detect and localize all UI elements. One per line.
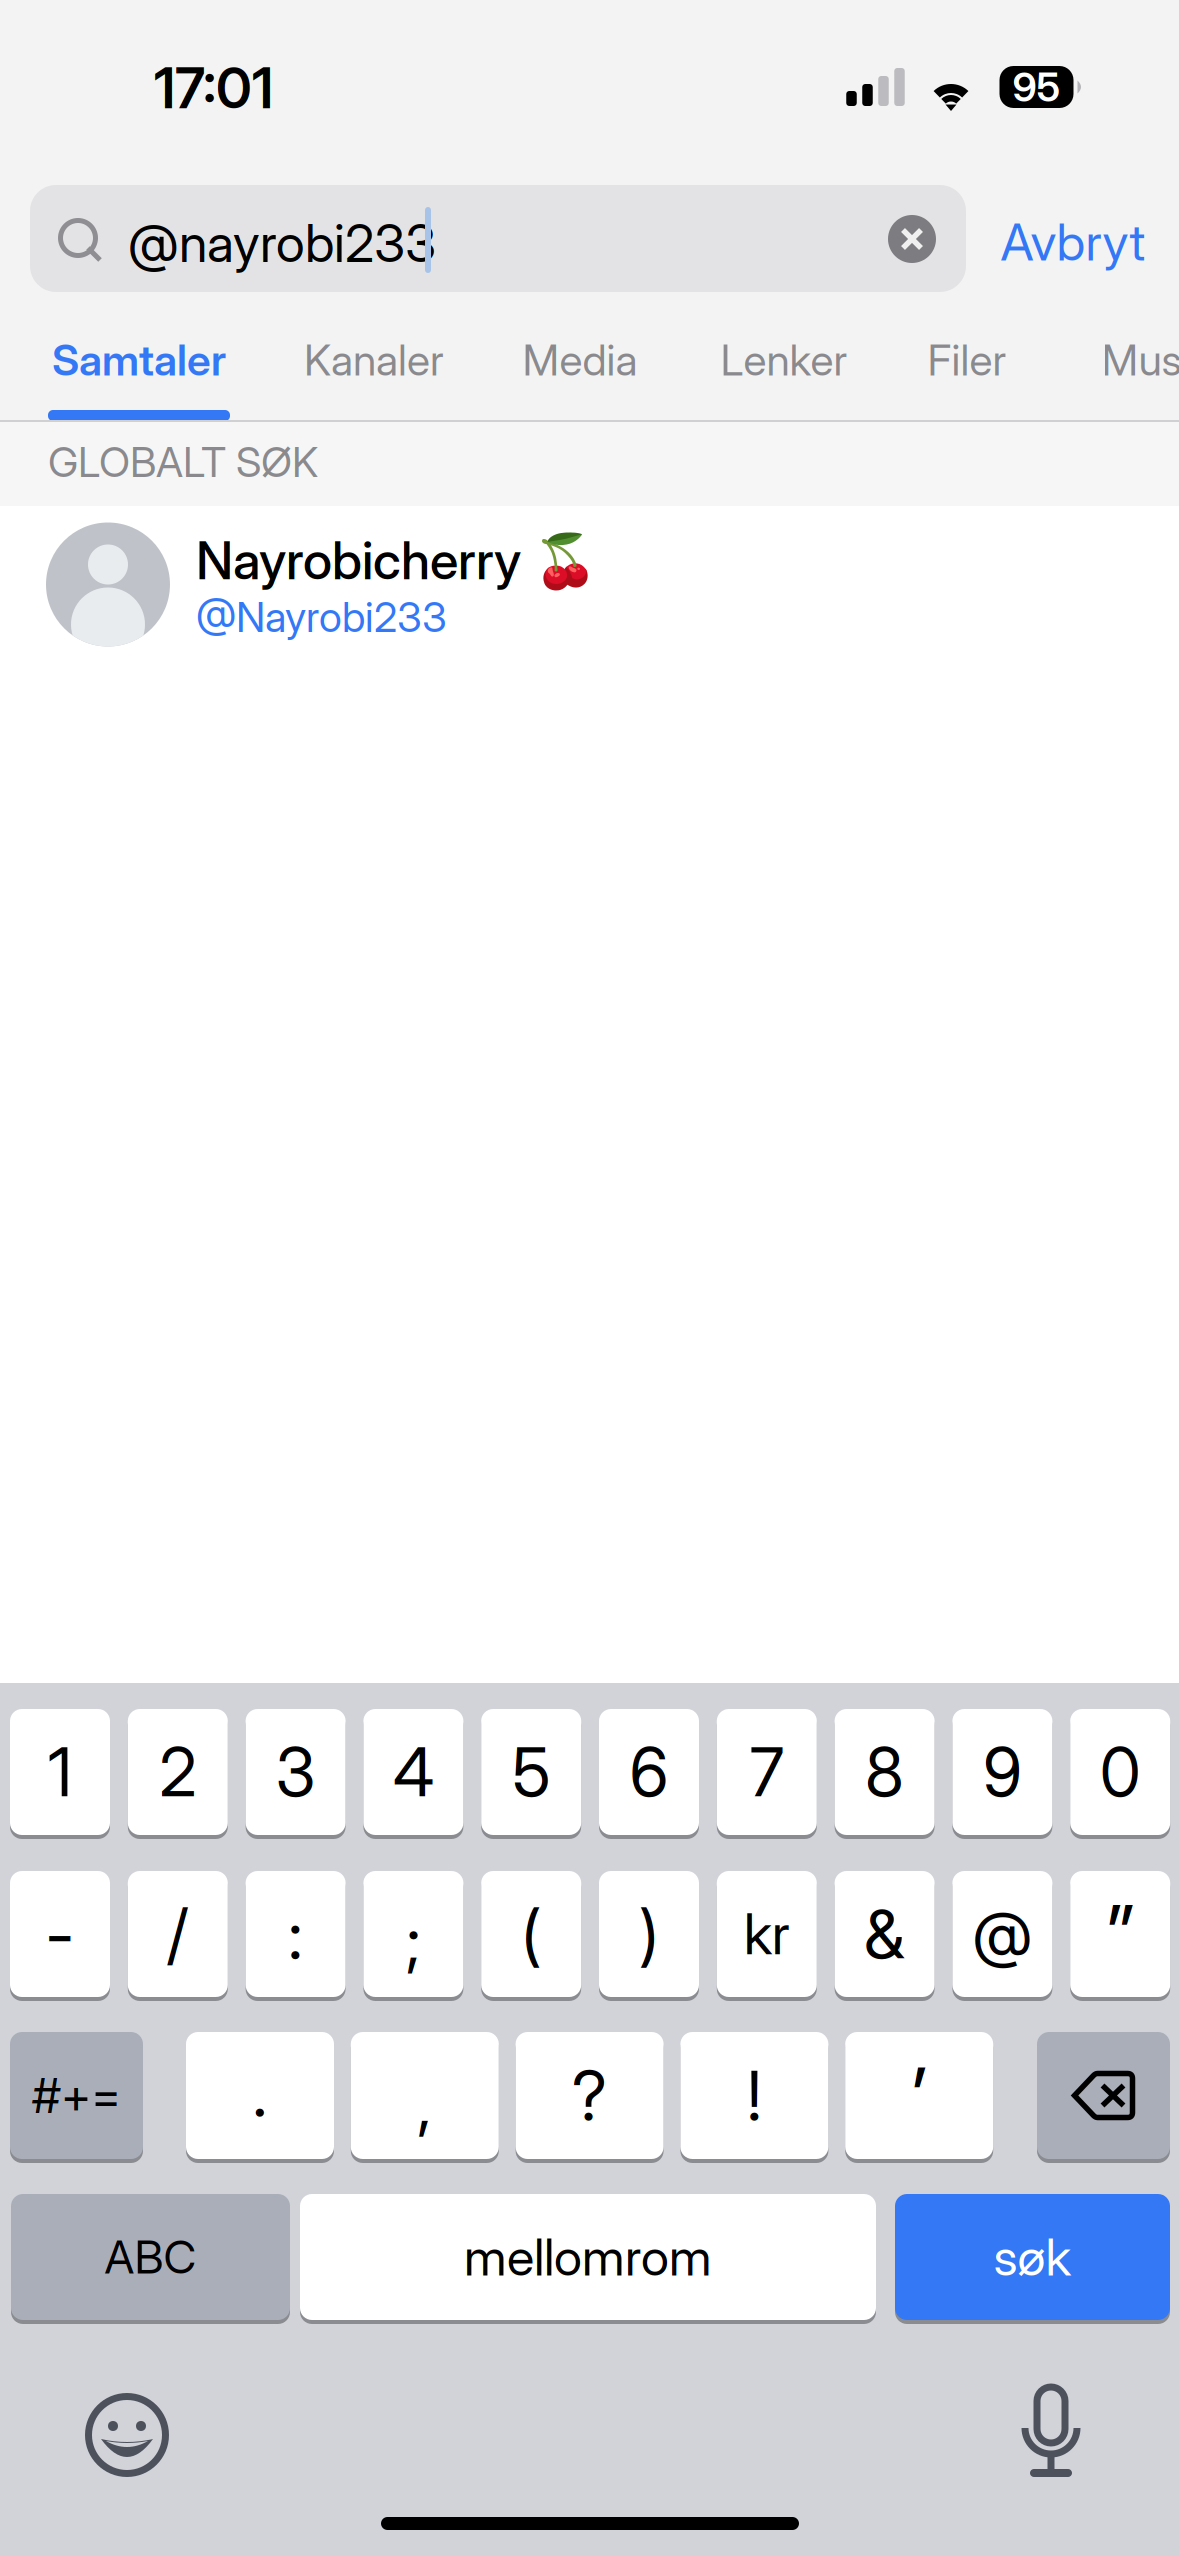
button[interactable]: 7: [717, 1707, 817, 1837]
button[interactable]: ABC: [11, 2192, 290, 2322]
button[interactable]: -: [10, 1869, 110, 1999]
button[interactable]: ;: [363, 1869, 463, 1999]
staticText: .: [252, 2051, 267, 2132]
button[interactable]: 2: [128, 1707, 228, 1837]
button[interactable]: Musikk: [1078, 322, 1179, 398]
button[interactable]: #+=: [10, 2030, 143, 2161]
staticText: ?: [572, 2055, 607, 2136]
staticText: (: [521, 1894, 541, 1974]
staticText: 0: [1100, 1732, 1141, 1812]
staticText: 7: [750, 1732, 784, 1812]
button[interactable]: ?: [516, 2030, 664, 2161]
button[interactable]: Dictation: [1011, 2388, 1091, 2478]
button[interactable]: Kanaler: [292, 322, 456, 398]
staticText: &: [864, 1894, 905, 1974]
staticText: !: [747, 2055, 762, 2136]
button[interactable]: 3: [246, 1707, 346, 1837]
staticText: søk: [993, 2226, 1071, 2288]
staticText: @Nayrobi233: [196, 592, 447, 642]
staticText: @nayrobi233: [128, 211, 436, 274]
staticText: Kanaler: [304, 334, 444, 386]
staticText: GLOBALT SØK: [48, 437, 318, 487]
staticText: ”: [1106, 1885, 1134, 1985]
staticText: kr: [744, 1900, 790, 1968]
button[interactable]: :: [246, 1869, 346, 1999]
staticText: Lenker: [720, 334, 847, 386]
button[interactable]: ”: [1070, 1869, 1170, 1999]
staticText: 17:01: [154, 54, 273, 122]
button[interactable]: Filer: [916, 322, 1018, 398]
staticText: 1: [48, 1732, 72, 1812]
button[interactable]: kr: [717, 1869, 817, 1999]
staticText: ,: [417, 2063, 432, 2144]
button[interactable]: Media: [510, 322, 650, 398]
staticText: Samtaler: [52, 334, 226, 386]
staticText: 8: [865, 1732, 904, 1812]
button[interactable]: søk: [895, 2192, 1170, 2322]
button[interactable]: 4: [363, 1707, 463, 1837]
button[interactable]: Lenker: [708, 322, 860, 398]
button[interactable]: ’: [845, 2030, 993, 2161]
button[interactable]: 9: [952, 1707, 1052, 1837]
button[interactable]: 0: [1070, 1707, 1170, 1837]
staticText: Filer: [927, 334, 1006, 386]
staticText: @: [972, 1897, 1032, 1971]
staticText: ): [639, 1894, 659, 1974]
staticText: Avbryt: [1000, 211, 1145, 273]
button[interactable]: 5: [481, 1707, 581, 1837]
staticText: #+=: [32, 2066, 121, 2125]
staticText: mellomrom: [464, 2226, 712, 2288]
staticText: -: [45, 1894, 74, 1974]
button[interactable]: 8: [835, 1707, 935, 1837]
button[interactable]: !: [680, 2030, 828, 2161]
button[interactable]: Clear search text: [888, 215, 936, 263]
staticText: ’: [911, 2047, 927, 2147]
staticText: ;: [406, 1900, 421, 1980]
button[interactable]: &: [835, 1869, 935, 1999]
staticText: :: [288, 1894, 303, 1974]
staticText: 6: [629, 1732, 668, 1812]
button[interactable]: ,: [351, 2030, 499, 2161]
staticText: 95: [1012, 63, 1060, 111]
button[interactable]: 6: [599, 1707, 699, 1837]
staticText: Media: [522, 334, 637, 386]
staticText: 9: [983, 1732, 1022, 1812]
button[interactable]: (: [481, 1869, 581, 1999]
button[interactable]: @: [952, 1869, 1052, 1999]
button[interactable]: Emoji keyboard: [87, 2395, 167, 2475]
button[interactable]: 1: [10, 1707, 110, 1837]
button[interactable]: Nayrobicherry 🍒: [0, 506, 1179, 671]
button[interactable]: mellomrom: [300, 2192, 876, 2322]
staticText: Musikk: [1101, 334, 1179, 386]
staticText: 4: [393, 1732, 434, 1812]
button[interactable]: Delete: [1037, 2030, 1170, 2161]
staticText: Nayrobicherry 🍒: [196, 529, 598, 592]
button[interactable]: Samtaler: [44, 322, 234, 398]
button[interactable]: Avbryt: [985, 196, 1161, 288]
button[interactable]: /: [128, 1869, 228, 1999]
staticText: 3: [276, 1732, 316, 1812]
staticText: ABC: [104, 2230, 196, 2284]
staticText: 2: [159, 1732, 196, 1812]
button[interactable]: ): [599, 1869, 699, 1999]
staticText: 5: [512, 1732, 550, 1812]
button[interactable]: .: [186, 2030, 334, 2161]
staticText: /: [167, 1894, 189, 1974]
